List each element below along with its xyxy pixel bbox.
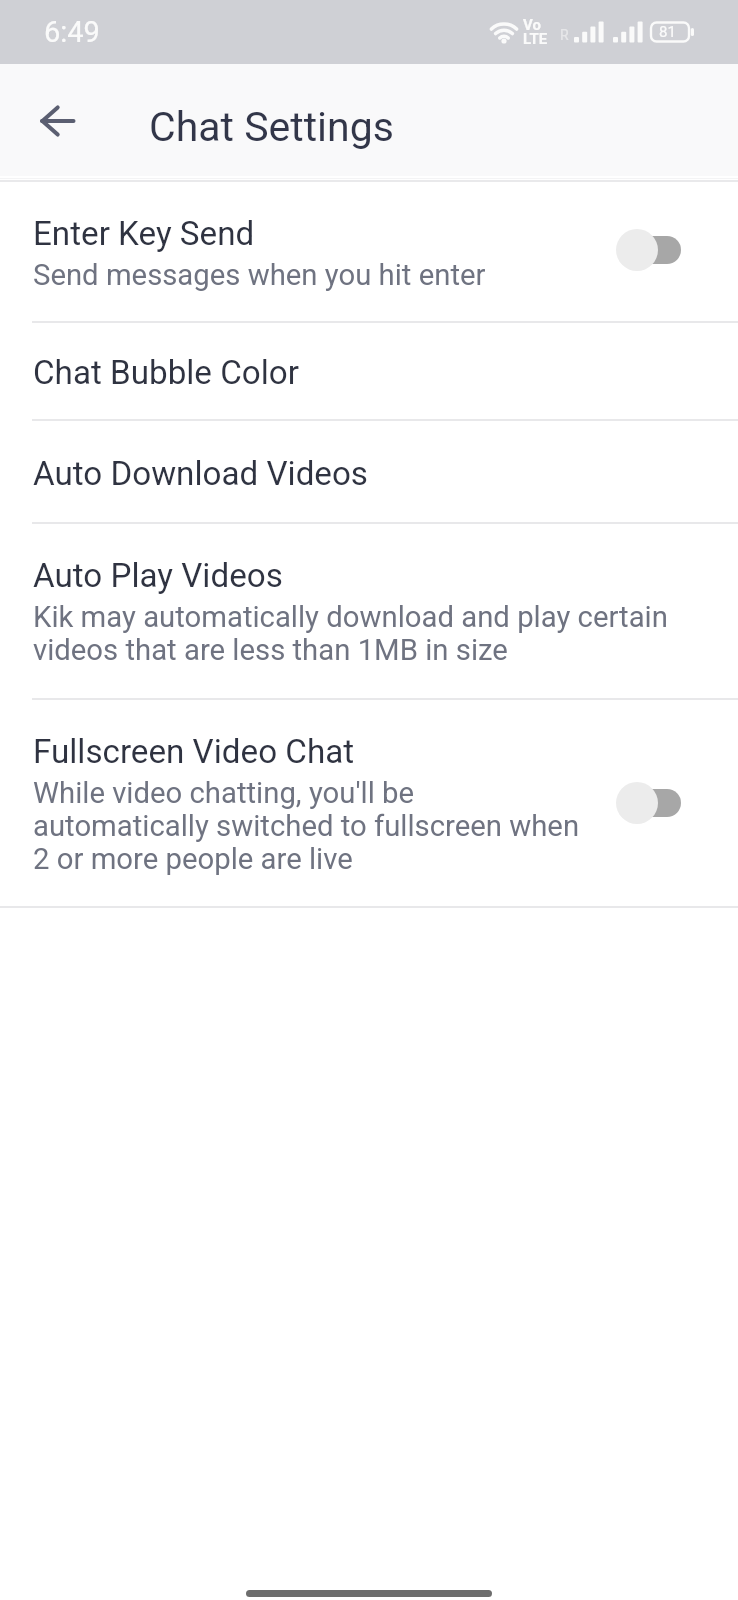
- staticText: 81: [659, 23, 676, 41]
- button[interactable]: Toggle: [616, 227, 681, 273]
- button[interactable]: Auto Download Videos: [0, 420, 738, 523]
- staticText: Send messages when you hit enter: [33, 259, 486, 292]
- button[interactable]: Toggle: [616, 780, 681, 826]
- button[interactable]: Back: [22, 86, 92, 156]
- staticText: Chat Settings: [149, 103, 394, 151]
- button[interactable]: Fullscreen Video Chat: [0, 699, 738, 907]
- button[interactable]: Chat Bubble Color: [0, 322, 738, 420]
- staticText: Auto Play Videos: [33, 556, 283, 595]
- staticText: 6:49: [44, 15, 100, 49]
- staticText: While video chatting, you'll be automati…: [33, 777, 581, 876]
- staticText: LTE: [523, 30, 548, 48]
- button[interactable]: Enter Key Send: [0, 178, 738, 322]
- staticText: Vo: [523, 16, 541, 34]
- button[interactable]: Auto Play Videos: [0, 523, 738, 699]
- staticText: Enter Key Send: [33, 214, 255, 253]
- staticText: Fullscreen Video Chat: [33, 732, 355, 771]
- staticText: Kik may automatically download and play …: [33, 601, 673, 667]
- staticText: R: [560, 27, 569, 43]
- staticText: Chat Bubble Color: [33, 353, 299, 392]
- staticText: Auto Download Videos: [33, 454, 369, 493]
